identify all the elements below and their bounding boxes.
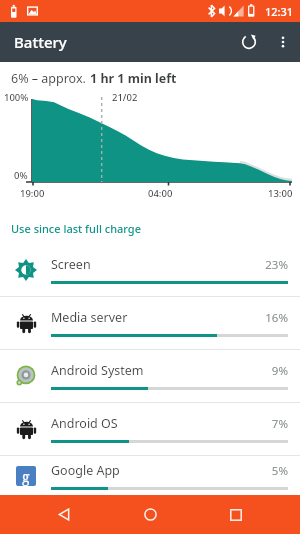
- staticText: 5%: [271, 463, 288, 479]
- staticText: 6% – approx.: [11, 70, 90, 87]
- button[interactable]: Home: [128, 495, 172, 534]
- staticText: 19:00: [20, 187, 45, 200]
- staticText: Screen: [51, 256, 265, 273]
- staticText: Use since last full charge: [11, 221, 141, 236]
- staticText: 9%: [271, 363, 288, 379]
- staticText: 13:00: [268, 187, 293, 200]
- staticText: g: [22, 467, 30, 486]
- staticText: Battery: [14, 32, 67, 52]
- button[interactable]: Media server: [0, 297, 300, 349]
- staticText: Media server: [51, 309, 265, 326]
- button[interactable]: More options: [266, 25, 300, 59]
- button[interactable]: Screen: [0, 244, 300, 296]
- staticText: Google App: [51, 462, 271, 479]
- staticText: 1 hr 1 min left: [90, 70, 177, 87]
- staticText: 21/02: [112, 91, 138, 104]
- staticText: 04:00: [148, 187, 173, 200]
- button[interactable]: Back: [42, 495, 86, 534]
- button[interactable]: Android System: [0, 350, 300, 402]
- button[interactable]: Refresh: [232, 25, 266, 59]
- staticText: 0%: [14, 169, 28, 182]
- staticText: Android System: [51, 362, 271, 379]
- staticText: 23%: [265, 257, 288, 273]
- staticText: Android OS: [51, 415, 271, 432]
- staticText: 16%: [265, 310, 288, 326]
- button[interactable]: Recent apps: [214, 495, 258, 534]
- staticText: 100%: [4, 91, 29, 104]
- button[interactable]: g: [0, 456, 300, 495]
- button[interactable]: Android OS: [0, 403, 300, 455]
- button[interactable]: Use since last full charge: [0, 219, 300, 238]
- staticText: 7%: [271, 416, 288, 432]
- staticText: 12:31: [265, 4, 294, 19]
